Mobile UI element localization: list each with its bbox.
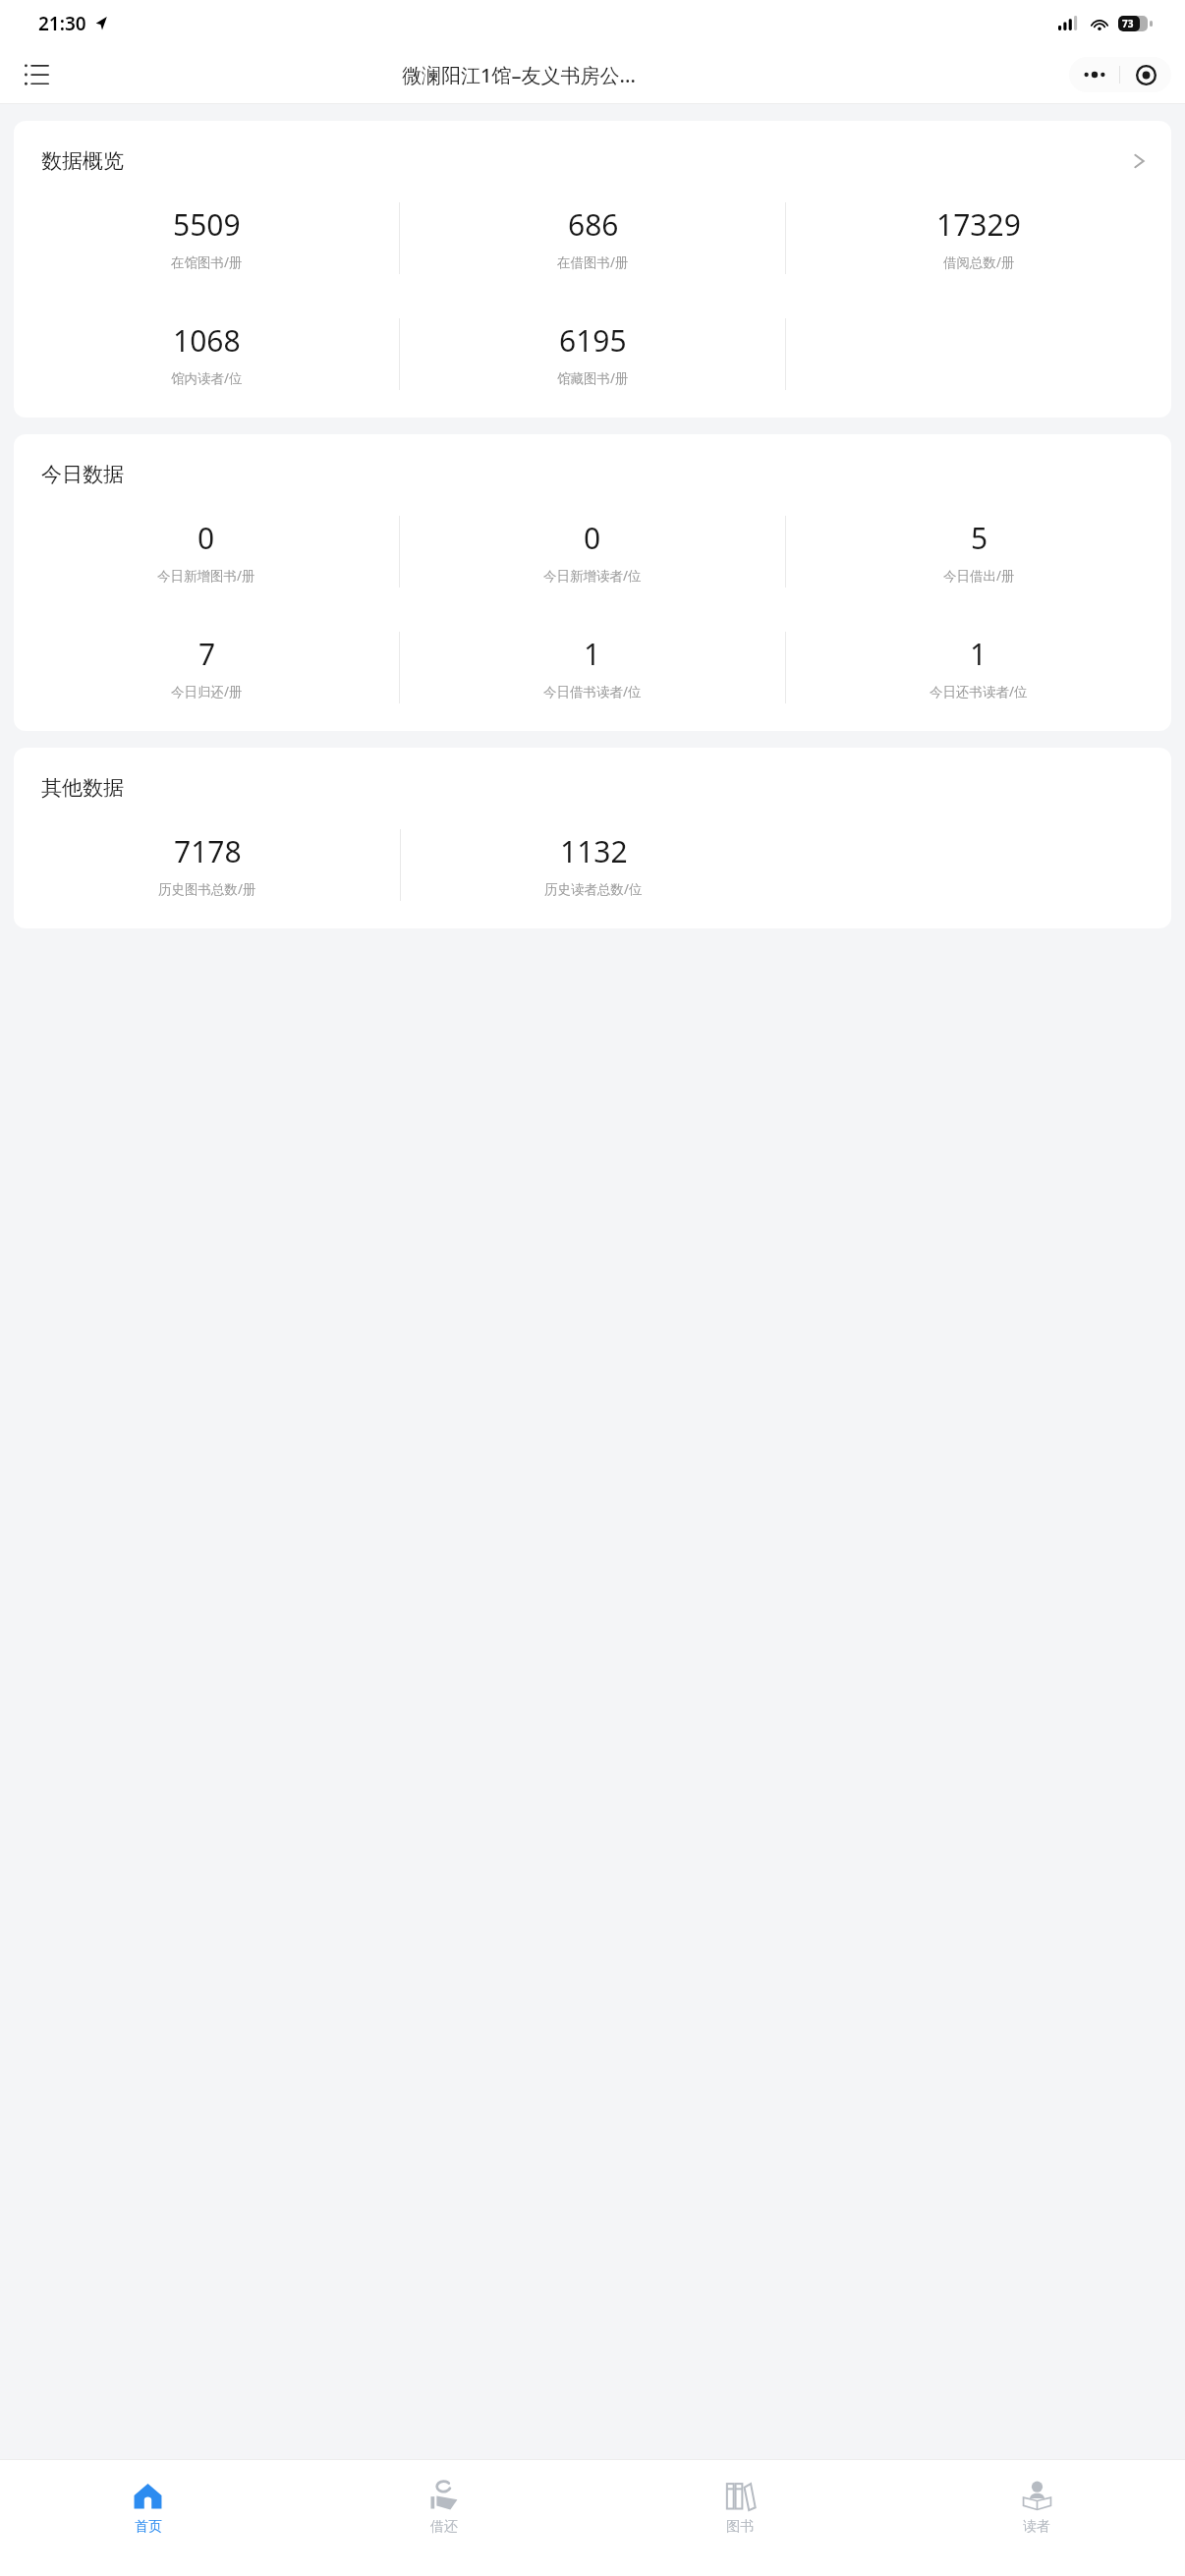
staticText: 5509 [173, 204, 241, 245]
staticText: 借阅总数/册 [943, 253, 1015, 271]
staticText: 1 [970, 634, 987, 674]
staticText: 17329 [936, 204, 1021, 245]
staticText: 在借图书/册 [557, 253, 629, 271]
staticText: 首页 [135, 2518, 162, 2536]
button[interactable]: 读者 [888, 2460, 1185, 2556]
staticText: 今日借书读者/位 [543, 683, 642, 700]
staticText: 借还 [430, 2518, 458, 2536]
staticText: 73 [1122, 17, 1134, 30]
staticText: 686 [568, 204, 619, 245]
staticText: 7178 [174, 831, 242, 871]
staticText: 5 [971, 518, 988, 558]
staticText: 7 [198, 634, 216, 674]
staticText: 1 [584, 634, 601, 674]
staticText: 其他数据 [41, 775, 124, 801]
staticText: 21:30 [38, 11, 86, 36]
staticText: 今日归还/册 [171, 683, 243, 700]
staticText: 1068 [173, 320, 241, 361]
staticText: 馆藏图书/册 [557, 369, 629, 387]
button[interactable]: 数据概览 [14, 121, 1171, 180]
staticText: 馆内读者/位 [171, 369, 243, 387]
staticText: 今日新增图书/册 [157, 567, 255, 585]
staticText: 今日还书读者/位 [930, 683, 1028, 700]
staticText: 1132 [560, 831, 628, 871]
staticText: 今日新增读者/位 [543, 567, 642, 585]
button[interactable]: More [1069, 57, 1119, 92]
button[interactable]: 图书 [592, 2460, 888, 2556]
staticText: 6195 [559, 320, 627, 361]
button[interactable]: Menu [14, 51, 61, 98]
staticText: 0 [584, 518, 601, 558]
staticText: 历史图书总数/册 [158, 880, 256, 898]
staticText: 历史读者总数/位 [544, 880, 643, 898]
staticText: 0 [197, 518, 215, 558]
staticText: 读者 [1023, 2518, 1050, 2536]
staticText: 今日数据 [41, 462, 124, 487]
staticText: 在馆图书/册 [171, 253, 243, 271]
staticText: 今日借出/册 [943, 567, 1015, 585]
button[interactable]: 首页 [0, 2460, 296, 2556]
button[interactable]: 借还 [296, 2460, 592, 2556]
staticText: 图书 [726, 2518, 754, 2536]
button[interactable]: Close [1120, 57, 1171, 92]
staticText: 数据概览 [41, 148, 124, 174]
staticText: 微澜阳江1馆–友义书房公... [402, 62, 636, 88]
